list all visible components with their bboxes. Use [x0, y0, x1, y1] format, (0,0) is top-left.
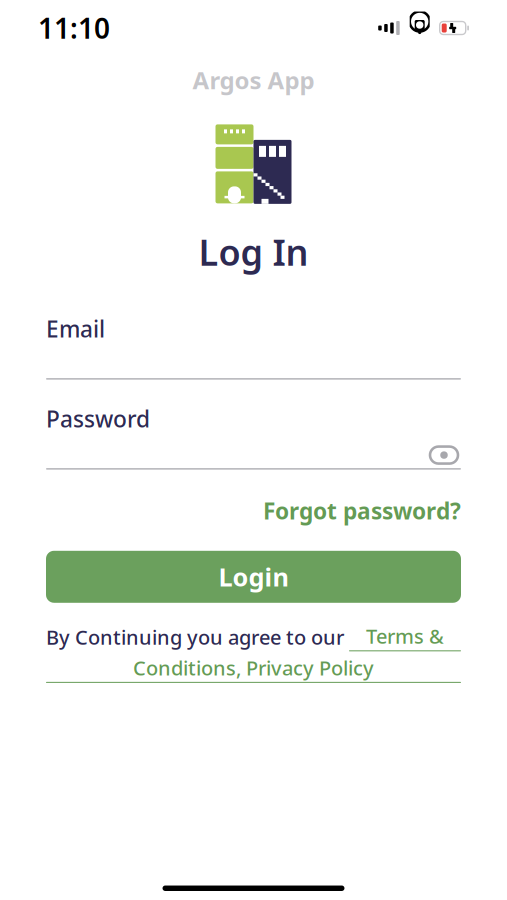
button[interactable]: Forgot password? [263, 496, 461, 526]
staticText: Argos App [192, 64, 314, 96]
button[interactable]: Terms & [349, 623, 461, 651]
staticText: By Continuing you agree to our [46, 624, 349, 650]
staticText: Log In [198, 228, 308, 276]
staticText: Conditions, Privacy Policy [133, 654, 374, 681]
staticText: Password [46, 404, 150, 434]
button[interactable]: Conditions, Privacy Policy [46, 654, 461, 683]
staticText: Login [218, 560, 288, 594]
button[interactable]: Show password [427, 442, 461, 468]
staticText: Email [46, 314, 105, 344]
staticText: Forgot password? [263, 496, 461, 526]
button[interactable]: Login [46, 551, 461, 603]
staticText: 11:10 [38, 9, 110, 47]
staticText: Terms & [366, 623, 444, 649]
